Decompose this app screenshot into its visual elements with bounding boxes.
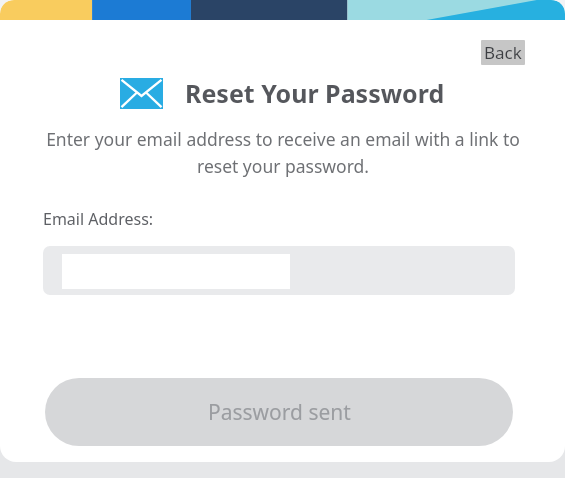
staticText: Email Address: — [43, 208, 154, 230]
staticText: COMPLAINTS — [352, 413, 530, 450]
button[interactable]: Password sent — [45, 378, 513, 446]
staticText: Back — [484, 41, 522, 64]
button[interactable] — [43, 246, 515, 295]
staticText: Enter your email address to receive an e… — [43, 127, 523, 178]
button[interactable]: Back — [481, 40, 525, 65]
staticText: Password sent — [208, 398, 351, 427]
staticText: BOARD — [352, 444, 447, 462]
staticText: Reset Your Password — [185, 76, 445, 110]
